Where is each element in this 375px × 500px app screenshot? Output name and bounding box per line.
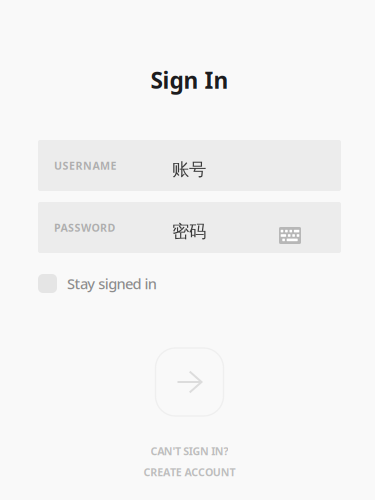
button[interactable]: CAN'T SIGN IN? [151, 446, 228, 456]
staticText: CAN'T SIGN IN? [151, 444, 228, 458]
button[interactable]: Stay signed in [38, 274, 341, 293]
staticText: PASSWORD [54, 220, 115, 235]
staticText: USERNAME [54, 158, 116, 173]
button[interactable]: Sign In [155, 348, 223, 416]
staticText: CREATE ACCOUNT [143, 465, 235, 479]
staticText: Stay signed in [67, 274, 157, 293]
staticText: 密码 [172, 221, 206, 242]
button[interactable]: PASSWORD [38, 202, 341, 253]
button[interactable]: CREATE ACCOUNT [143, 467, 235, 477]
staticText: Sign In [150, 65, 228, 95]
button[interactable]: USERNAME [38, 140, 341, 191]
staticText: 账号 [172, 159, 206, 180]
